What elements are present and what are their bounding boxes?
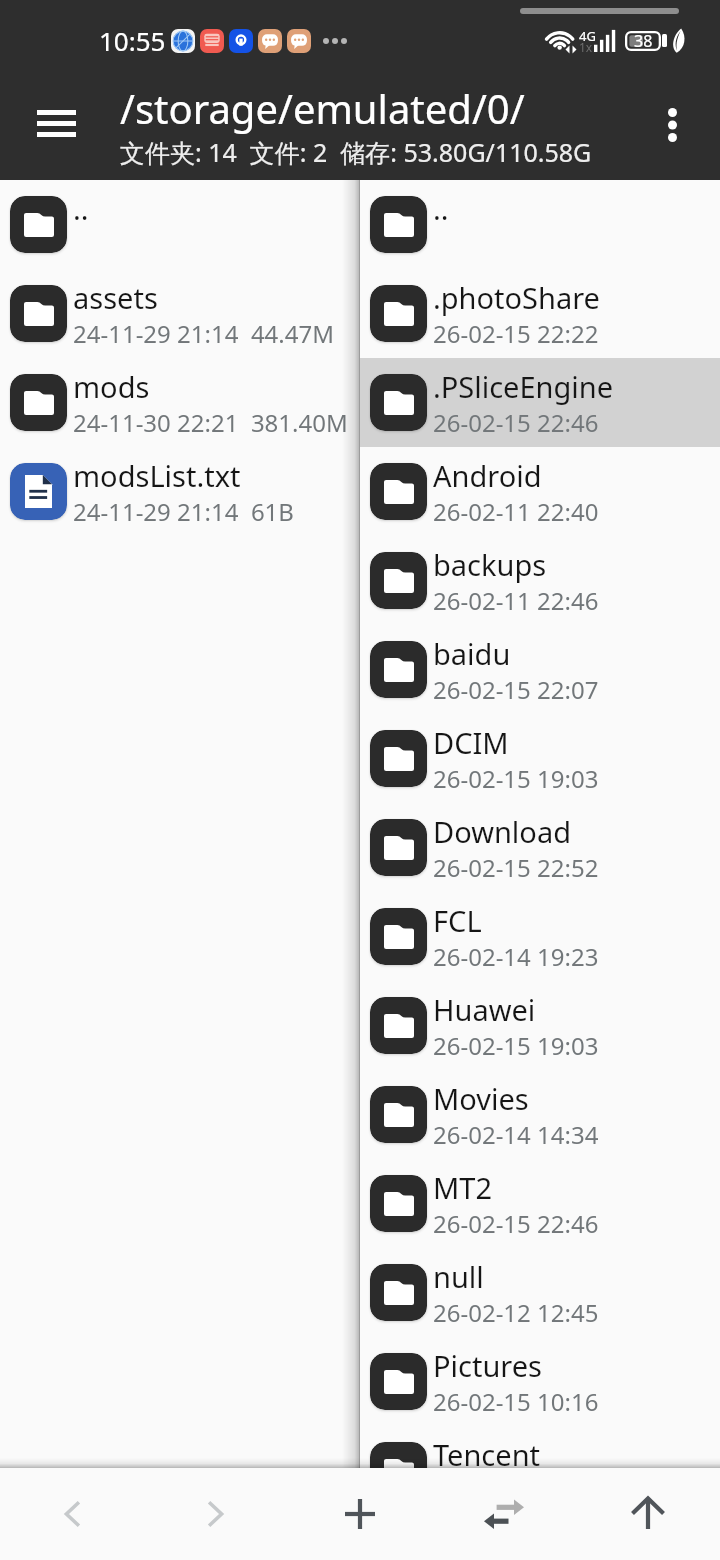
staticText: 26-02-11 22:46: [433, 584, 599, 617]
button[interactable]: .photoShare: [360, 269, 720, 358]
staticText: 26-02-15 22:52: [433, 851, 599, 884]
staticText: Download: [433, 812, 571, 851]
staticText: 26-02-15 10:16: [433, 1385, 599, 1418]
staticText: 26-02-14 19:23: [433, 940, 599, 973]
button[interactable]: backups: [360, 536, 720, 625]
staticText: 26-02-11 22:40: [433, 495, 599, 528]
button[interactable]: ..: [0, 180, 360, 269]
staticText: Huawei: [433, 990, 536, 1029]
staticText: baidu: [433, 634, 511, 673]
button[interactable]: Android: [360, 447, 720, 536]
staticText: 26-02-15 22:46: [433, 406, 599, 439]
button[interactable]: Forward: [144, 1468, 288, 1560]
button[interactable]: baidu: [360, 625, 720, 714]
button[interactable]: Back: [0, 1468, 144, 1560]
button[interactable]: Movies: [360, 1070, 720, 1159]
button[interactable]: ..: [360, 180, 720, 269]
staticText: backups: [433, 545, 547, 584]
staticText: 24-11-29 21:14 44.47M: [73, 317, 334, 350]
button[interactable]: MT2: [360, 1159, 720, 1248]
staticText: Android: [433, 456, 542, 495]
staticText: 26-02-14 14:34: [433, 1118, 599, 1151]
staticText: .PSliceEngine: [433, 367, 614, 406]
button[interactable]: Download: [360, 803, 720, 892]
staticText: ..: [73, 189, 89, 228]
staticText: 24-11-29 21:14 61B: [73, 495, 294, 528]
staticText: 文件夹: 14 文件: 2 储存: 53.80G/110.58G: [120, 135, 592, 169]
staticText: ..: [433, 189, 449, 228]
button[interactable]: Up: [576, 1468, 720, 1560]
staticText: FCL: [433, 901, 482, 940]
button[interactable]: Tencent: [360, 1426, 720, 1468]
staticText: DCIM: [433, 723, 509, 762]
button[interactable]: Huawei: [360, 981, 720, 1070]
button[interactable]: FCL: [360, 892, 720, 981]
button[interactable]: Pictures: [360, 1337, 720, 1426]
button[interactable]: mods: [0, 358, 360, 447]
staticText: 26-02-15 19:03: [433, 1029, 599, 1062]
staticText: 4G: [579, 27, 596, 45]
staticText: 26-02-12 12:45: [433, 1296, 599, 1329]
staticText: .photoShare: [433, 278, 600, 317]
button[interactable]: More options: [639, 89, 705, 161]
button[interactable]: Transfer: [432, 1468, 576, 1560]
staticText: mods: [73, 367, 150, 406]
staticText: null: [433, 1257, 484, 1296]
button[interactable]: .PSliceEngine: [360, 358, 720, 447]
staticText: assets: [73, 278, 158, 317]
staticText: /storage/emulated/0/: [120, 81, 525, 135]
staticText: 26-02-15 22:22: [433, 317, 599, 350]
staticText: 10:55: [99, 23, 166, 58]
button[interactable]: assets: [0, 269, 360, 358]
staticText: MT2: [433, 1168, 493, 1207]
staticText: 26-02-15 22:07: [433, 673, 599, 706]
staticText: Tencent: [433, 1435, 541, 1468]
button[interactable]: DCIM: [360, 714, 720, 803]
button[interactable]: Add: [288, 1468, 432, 1560]
staticText: 26-02-15 19:03: [433, 762, 599, 795]
staticText: 26-02-15 22:46: [433, 1207, 599, 1240]
staticText: Pictures: [433, 1346, 542, 1385]
button[interactable]: null: [360, 1248, 720, 1337]
button[interactable]: modsList.txt: [0, 447, 360, 536]
staticText: modsList.txt: [73, 456, 241, 495]
button[interactable]: Menu: [6, 87, 106, 160]
staticText: 38: [634, 30, 653, 50]
staticText: 24-11-30 22:21 381.40M: [73, 406, 348, 439]
staticText: Movies: [433, 1079, 529, 1118]
staticText: 1x: [579, 39, 593, 55]
